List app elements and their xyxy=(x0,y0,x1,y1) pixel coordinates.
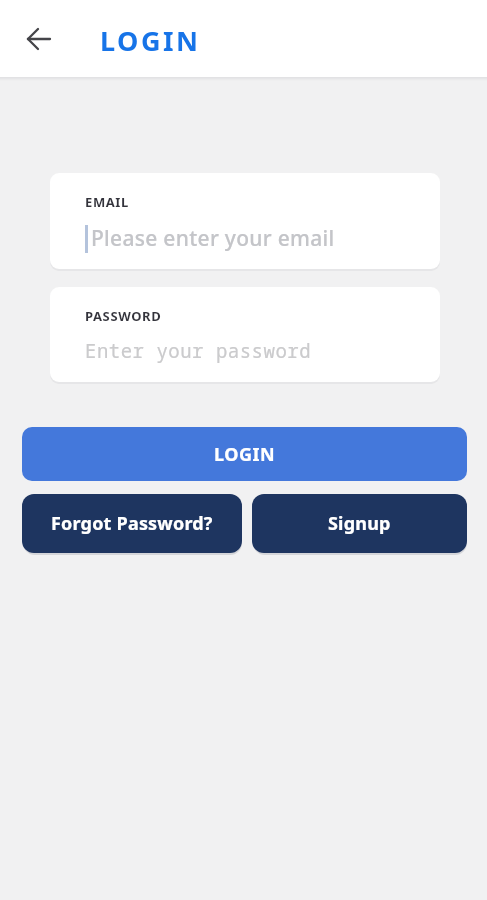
staticText: PASSWORD xyxy=(85,307,162,325)
button[interactable]: EMAIL xyxy=(50,173,440,269)
button[interactable]: Forgot Password? xyxy=(22,494,242,553)
button[interactable]: PASSWORD xyxy=(50,287,440,382)
staticText: LOGIN xyxy=(214,442,276,467)
staticText: LOGIN xyxy=(100,22,201,59)
staticText: Please enter your email xyxy=(91,224,335,253)
staticText: EMAIL xyxy=(85,193,129,211)
button[interactable]: LOGIN xyxy=(22,427,467,481)
button[interactable]: Signup xyxy=(252,494,467,553)
button[interactable] xyxy=(16,16,62,62)
staticText: Enter your password xyxy=(85,338,312,364)
staticText: Forgot Password? xyxy=(51,511,213,536)
staticText: Signup xyxy=(328,511,391,536)
